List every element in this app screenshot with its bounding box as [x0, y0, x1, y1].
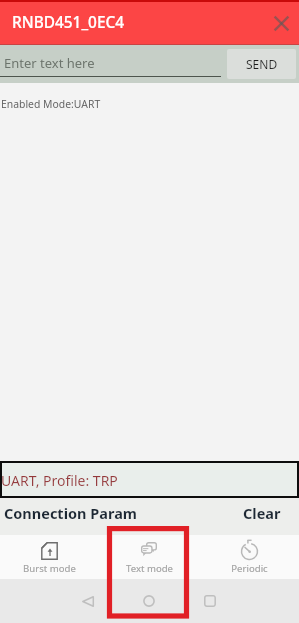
- button[interactable]: Back: [76, 589, 100, 613]
- button[interactable]: Disconnect: [268, 10, 294, 36]
- button[interactable]: SEND: [227, 49, 296, 79]
- button[interactable]: Enter text here: [0, 54, 221, 79]
- button[interactable]: Text mode: [99, 535, 199, 579]
- staticText: UART, Profile: TRP: [1, 471, 118, 490]
- button[interactable]: UART, Profile: TRP: [0, 461, 299, 498]
- staticText: Enabled Mode:UART: [1, 97, 101, 111]
- button[interactable]: Recent apps: [198, 589, 222, 613]
- staticText: Burst mode: [23, 562, 76, 575]
- staticText: Text mode: [126, 562, 173, 575]
- staticText: Clear: [243, 503, 281, 523]
- button[interactable]: Home: [137, 589, 161, 613]
- button[interactable]: Burst mode: [0, 535, 99, 579]
- staticText: SEND: [246, 56, 278, 72]
- staticText: Connection Param: [4, 503, 137, 523]
- button[interactable]: Connection Param: [0, 502, 180, 532]
- staticText: Enter text here: [4, 54, 95, 72]
- button[interactable]: Periodic: [199, 535, 299, 579]
- staticText: Periodic: [231, 562, 268, 575]
- button[interactable]: Clear: [241, 502, 299, 532]
- staticText: RNBD451_0EC4: [12, 12, 125, 33]
